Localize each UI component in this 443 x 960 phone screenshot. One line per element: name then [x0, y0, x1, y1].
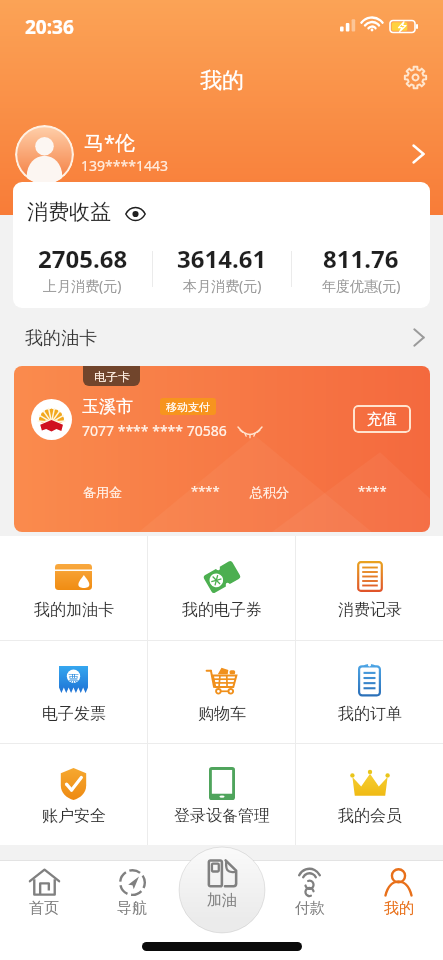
button[interactable]: 导航 — [88, 861, 176, 919]
staticText: 导航 — [117, 899, 147, 918]
button[interactable]: 首页 — [0, 861, 88, 919]
button[interactable]: 我的油卡 — [0, 318, 443, 358]
staticText: 票 — [68, 672, 79, 686]
staticText: 移动支付 — [166, 400, 210, 414]
staticText: 我的订单 — [338, 704, 402, 724]
button[interactable]: 加油 — [177, 847, 267, 919]
button[interactable]: 马*伦 — [0, 118, 443, 190]
button[interactable]: 票 — [0, 641, 147, 743]
staticText: **** — [191, 482, 220, 500]
staticText: 充值 — [367, 410, 397, 429]
staticText: 马*伦 — [84, 129, 136, 156]
staticText: 玉溪市 — [82, 396, 133, 417]
staticText: 付款 — [295, 899, 325, 918]
staticText: 加油 — [207, 891, 237, 910]
button[interactable]: 我的会员 — [296, 744, 443, 845]
button[interactable]: 电子卡 — [14, 366, 430, 532]
button[interactable]: 购物车 — [148, 641, 295, 743]
staticText: 我的电子券 — [182, 600, 262, 620]
staticText: 电子卡 — [94, 369, 130, 384]
button[interactable]: 我的电子券 — [148, 536, 295, 640]
staticText: 7077 **** **** 70586 — [82, 421, 227, 440]
staticText: 811.76 — [323, 242, 399, 275]
staticText: 电子发票 — [42, 704, 106, 724]
staticText: 139****1443 — [81, 156, 168, 175]
staticText: 登录设备管理 — [174, 806, 270, 826]
staticText: 我的 — [384, 899, 414, 918]
staticText: 3614.61 — [177, 242, 267, 275]
staticText: 我的会员 — [338, 806, 402, 826]
staticText: 总积分 — [250, 484, 289, 500]
button[interactable]: 我的 — [354, 861, 443, 919]
staticText: 我的油卡 — [25, 327, 97, 350]
staticText: 购物车 — [198, 704, 246, 724]
button[interactable]: 登录设备管理 — [148, 744, 295, 845]
staticText: 账户安全 — [42, 806, 106, 826]
staticText: 首页 — [29, 899, 59, 918]
staticText: 我的 — [200, 67, 244, 95]
staticText: 备用金 — [83, 484, 122, 500]
button[interactable]: Settings — [394, 56, 436, 98]
button[interactable]: 充值 — [353, 405, 411, 433]
button[interactable]: 付款 — [265, 861, 354, 919]
staticText: 我的加油卡 — [34, 600, 114, 620]
staticText: 消费收益 — [27, 199, 111, 225]
button[interactable]: 消费记录 — [296, 536, 443, 640]
staticText: 2705.68 — [38, 242, 128, 275]
staticText: 上月消费(元) — [43, 276, 122, 295]
staticText: 20:36 — [25, 14, 74, 40]
button[interactable]: 我的加油卡 — [0, 536, 147, 640]
staticText: 年度优惠(元) — [322, 276, 401, 295]
staticText: **** — [358, 482, 387, 500]
button[interactable]: 我的订单 — [296, 641, 443, 743]
staticText: 消费记录 — [338, 600, 402, 620]
button[interactable]: 账户安全 — [0, 744, 147, 845]
staticText: 本月消费(元) — [183, 276, 262, 295]
